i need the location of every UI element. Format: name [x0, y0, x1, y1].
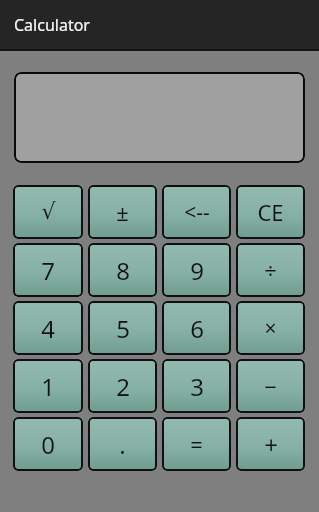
button[interactable]: 9	[162, 243, 231, 297]
staticText: √	[41, 199, 56, 225]
staticText: 0	[41, 428, 55, 461]
staticText: 9	[190, 254, 204, 287]
button[interactable]: ÷	[236, 243, 305, 297]
button[interactable]: 6	[162, 301, 231, 355]
button[interactable]: ×	[236, 301, 305, 355]
button[interactable]: 0	[13, 417, 83, 471]
button[interactable]: CE	[236, 185, 305, 239]
button[interactable]: ±	[88, 185, 157, 239]
staticText: 5	[116, 312, 130, 345]
button[interactable]: <--	[162, 185, 231, 239]
button[interactable]: 4	[13, 301, 83, 355]
button[interactable]: 2	[88, 359, 157, 413]
staticText: 1	[41, 370, 55, 403]
staticText: −	[264, 371, 277, 401]
staticText: .	[119, 428, 126, 461]
staticText: +	[264, 428, 278, 461]
staticText: ×	[264, 314, 277, 343]
staticText: 7	[41, 254, 55, 287]
staticText: CE	[257, 197, 284, 227]
button[interactable]: 7	[13, 243, 83, 297]
button[interactable]: 3	[162, 359, 231, 413]
staticText: 3	[190, 370, 204, 403]
staticText: ±	[116, 197, 129, 227]
button[interactable]: −	[236, 359, 305, 413]
staticText: ÷	[264, 255, 277, 285]
staticText: 2	[116, 370, 130, 403]
staticText: <--	[184, 198, 210, 227]
button[interactable]: Display	[14, 72, 305, 163]
button[interactable]: .	[88, 417, 157, 471]
button[interactable]: √	[13, 185, 83, 239]
staticText: 8	[116, 254, 130, 287]
staticText: =	[190, 429, 203, 459]
button[interactable]: 1	[13, 359, 83, 413]
button[interactable]: 8	[88, 243, 157, 297]
button[interactable]: =	[162, 417, 231, 471]
button[interactable]: 5	[88, 301, 157, 355]
staticText: Calculator	[14, 14, 90, 36]
button[interactable]: +	[236, 417, 305, 471]
staticText: 4	[41, 312, 55, 345]
staticText: 6	[190, 312, 204, 345]
